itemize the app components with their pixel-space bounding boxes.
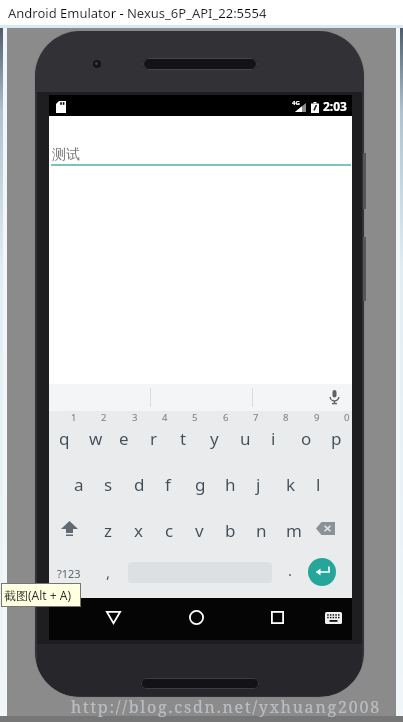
staticText: h [225,473,236,496]
staticText: c [165,519,174,542]
button[interactable] [271,611,284,624]
staticText: g [195,473,206,496]
staticText: t [180,427,187,450]
button[interactable] [61,521,78,536]
staticText: o [301,427,312,450]
button[interactable] [49,411,352,598]
staticText: w [89,427,103,450]
staticText: 6 [223,411,229,424]
staticText: 7 [253,411,259,424]
staticText: r [150,427,158,450]
staticText: 9 [314,411,320,424]
button[interactable] [189,610,204,625]
staticText: a [74,473,84,496]
staticText: 4 [162,411,168,424]
staticText: 1 [71,411,77,424]
staticText: 2:03 [323,98,347,114]
staticText: 8 [283,411,289,424]
staticText: x [134,519,143,542]
staticText: p [331,427,342,450]
staticText: m [286,519,302,542]
staticText: i [271,427,276,450]
staticText: v [195,519,204,542]
staticText: z [104,519,112,542]
staticText: j [256,473,261,496]
staticText: q [59,427,70,450]
staticText: Android Emulator - Nexus_6P_API_22:5554 [8,4,267,22]
button[interactable]: Android Emulator - Nexus_6P_API_22:5554 [0,0,403,25]
staticText: n [256,519,267,542]
staticText: . [288,560,293,580]
staticText: http://blog.csdn.net/yxhuang2008 [71,696,381,718]
staticText: 5 [192,411,198,424]
staticText: u [240,427,251,450]
staticText: k [286,473,296,496]
staticText: 0 [344,411,350,424]
staticText: s [104,473,113,496]
staticText: 截图(Alt + A) [4,587,72,603]
button[interactable] [106,611,121,624]
staticText: y [210,427,219,450]
staticText: 3 [132,411,138,424]
staticText: 2 [101,411,107,424]
staticText: d [134,473,145,496]
staticText: e [119,427,129,450]
staticText: b [225,519,236,542]
staticText: , [106,562,111,582]
staticText: ?123 [57,566,81,581]
staticText: 测试 [52,146,80,164]
staticText: 4G [292,99,300,107]
button[interactable] [49,384,352,411]
button[interactable] [316,522,335,535]
staticText: f [165,473,171,496]
button[interactable] [325,612,342,624]
button[interactable] [308,558,336,586]
staticText: l [316,473,321,496]
button[interactable]: 截图(Alt + A) [1,583,81,607]
